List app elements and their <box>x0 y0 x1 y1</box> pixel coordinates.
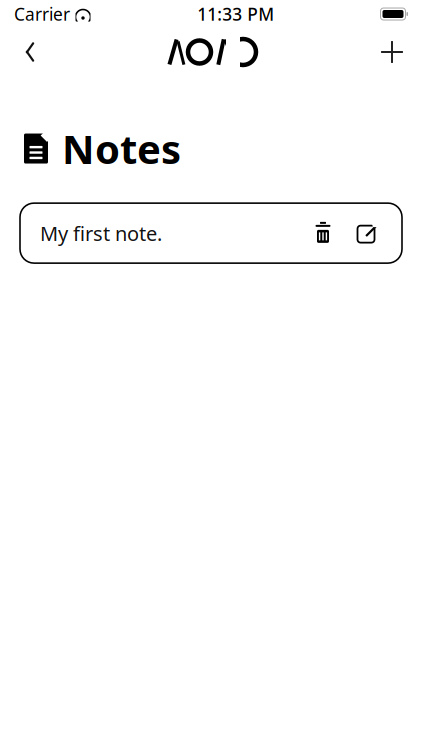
staticText: My first note. <box>40 220 162 246</box>
button[interactable]: Add note <box>370 30 414 74</box>
staticText: Carrier <box>14 2 70 25</box>
button[interactable]: Back <box>8 30 52 74</box>
button[interactable]: My first note. <box>20 203 402 263</box>
button[interactable]: Edit note <box>352 218 382 248</box>
button[interactable]: Delete note <box>308 218 338 248</box>
staticText: 11:33 PM <box>197 2 274 25</box>
staticText: Notes <box>62 122 181 175</box>
